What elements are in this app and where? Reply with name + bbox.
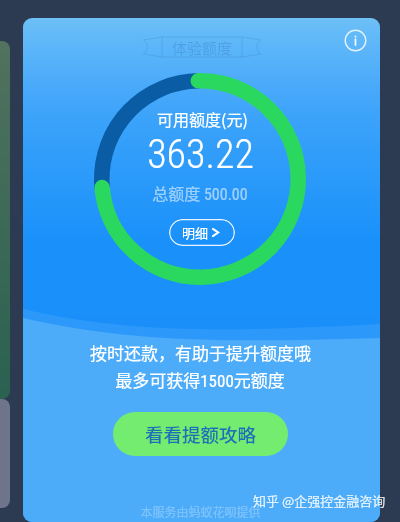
staticText: 363.22 <box>147 131 254 178</box>
button[interactable]: 看看提额攻略 <box>113 412 288 456</box>
staticText: 总额度 500.00 <box>152 181 248 204</box>
staticText: 看看提额攻略 <box>145 421 257 448</box>
staticText: 明细 <box>182 223 209 242</box>
staticText: 按时还款，有助于提升额度哦 <box>90 340 311 365</box>
staticText: 最多可获得1500元额度 <box>115 367 285 392</box>
staticText: 可用额度(元) <box>157 107 248 130</box>
button[interactable]: 明细 <box>169 219 235 246</box>
staticText: 知乎 @企强控金融咨询 <box>253 491 386 510</box>
staticText: 本服务由蚂蚁花呗提供 <box>140 503 261 520</box>
staticText: 体验额度 <box>172 37 233 57</box>
button[interactable]: Information <box>344 29 367 52</box>
button[interactable]: Previous card <box>0 41 10 399</box>
